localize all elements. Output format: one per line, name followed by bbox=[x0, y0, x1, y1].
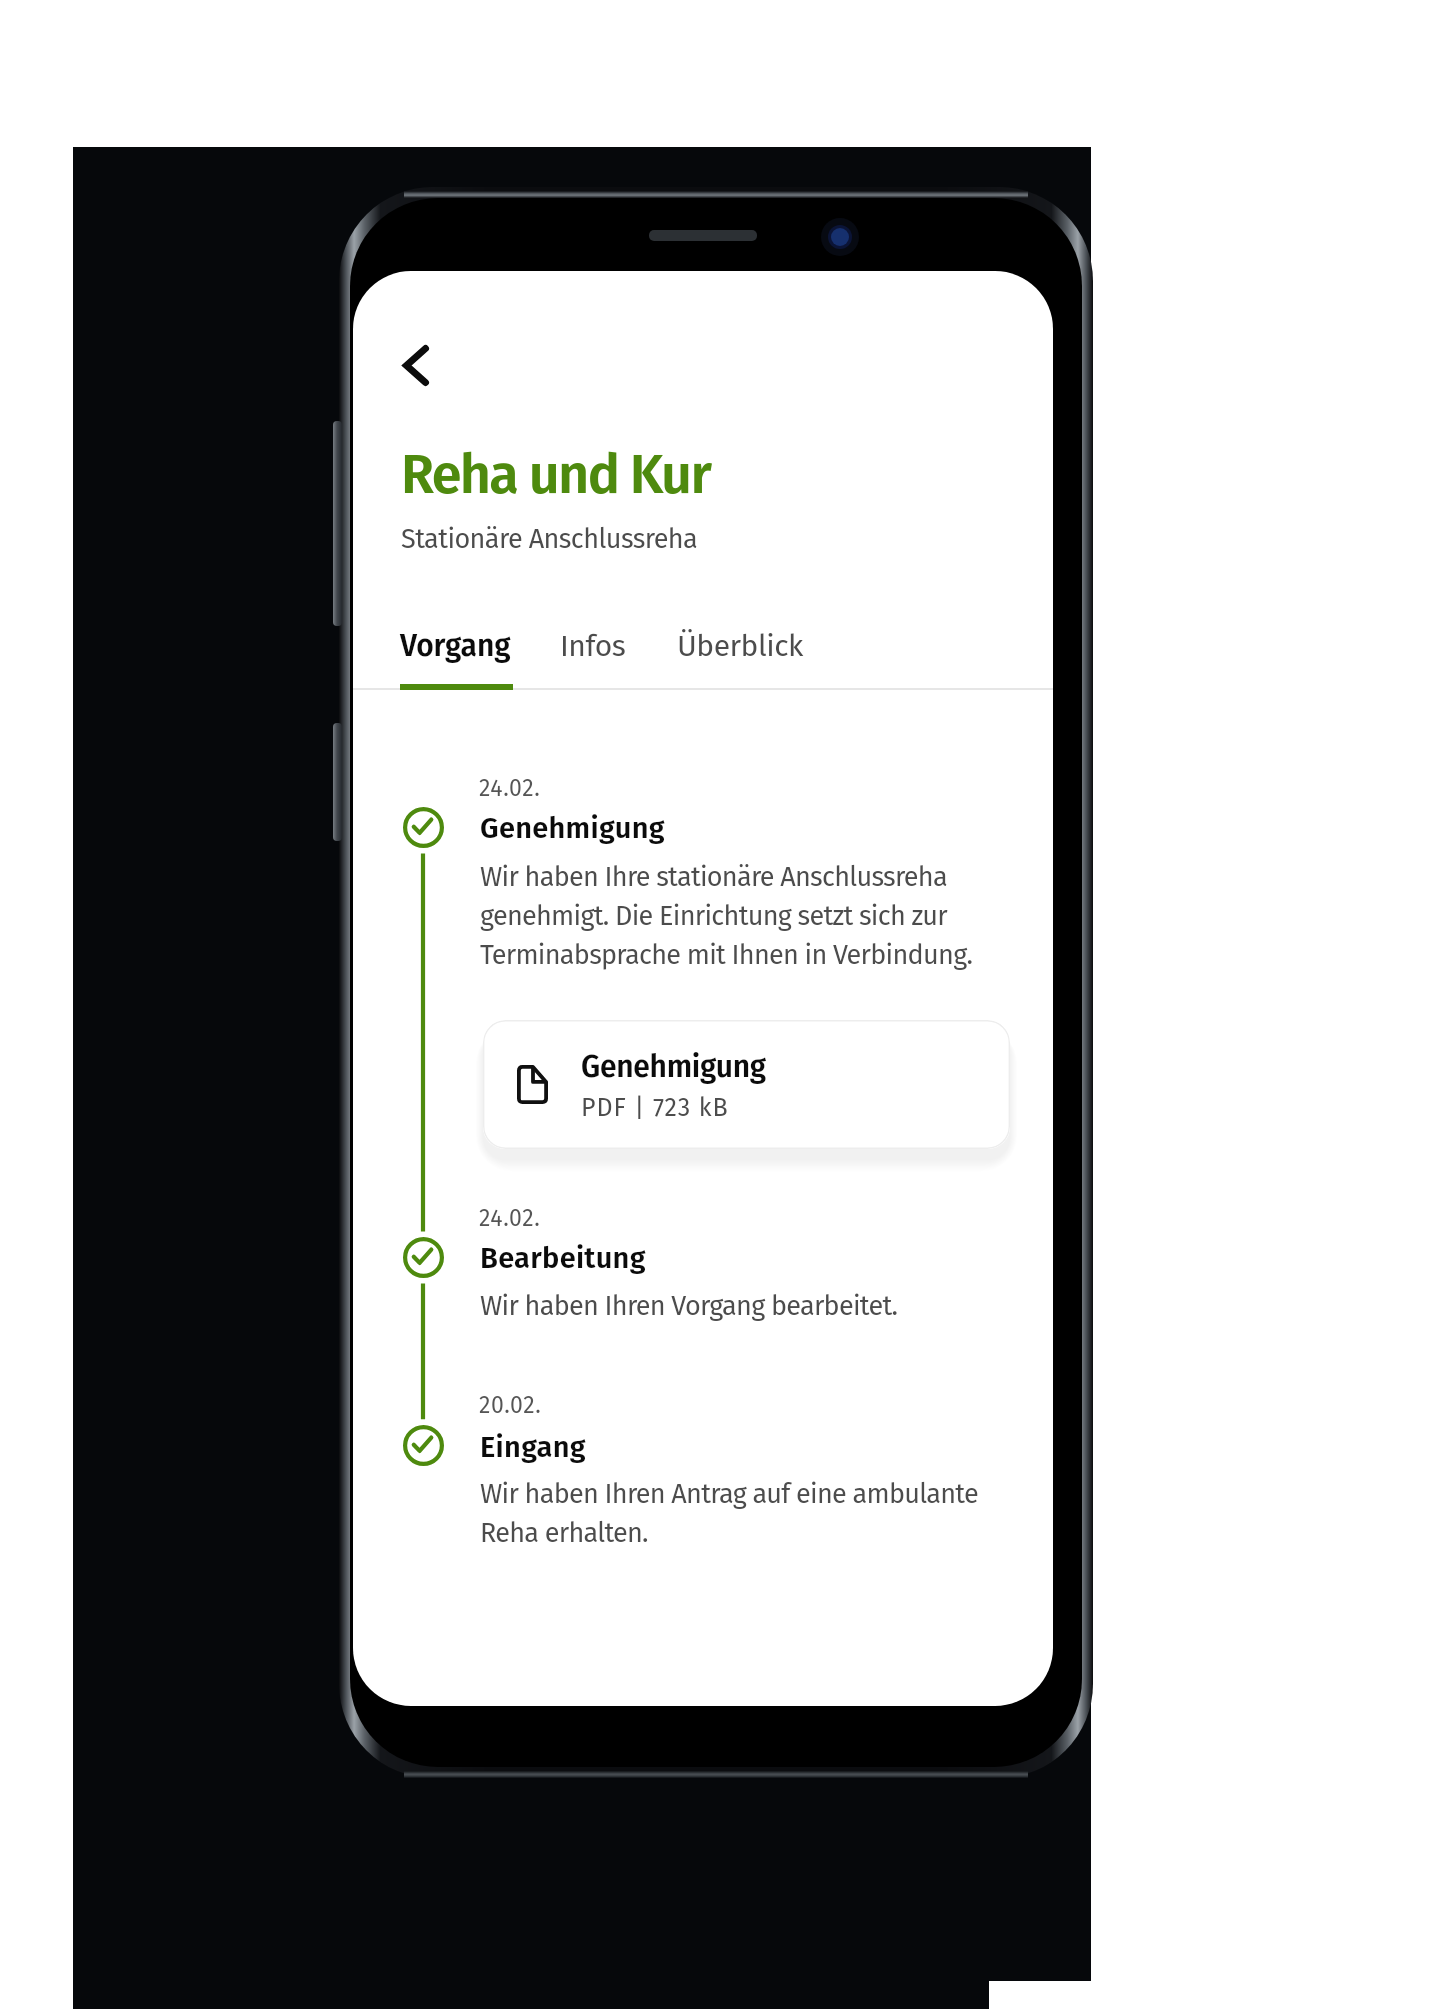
staticText: Wir haben Ihre stationäre Anschlussreha … bbox=[480, 856, 1000, 973]
staticText: Genehmigung bbox=[581, 1049, 766, 1085]
staticText: Eingang bbox=[480, 1430, 586, 1465]
staticText: Vorgang bbox=[400, 628, 511, 664]
staticText: Überblick bbox=[677, 628, 803, 664]
staticText: Wir haben Ihren Vorgang bearbeitet. bbox=[480, 1285, 1000, 1324]
staticText: Stationäre Anschlussreha bbox=[401, 523, 698, 555]
button[interactable]: Vorgang bbox=[392, 612, 521, 690]
staticText: Bearbeitung bbox=[480, 1241, 646, 1276]
staticText: 20.02. bbox=[479, 1391, 542, 1419]
staticText: 24.02. bbox=[479, 774, 541, 802]
staticText: PDF | 723 kB bbox=[581, 1093, 729, 1123]
staticText: 24.02. bbox=[479, 1204, 541, 1232]
button[interactable]: Back bbox=[382, 331, 450, 399]
staticText: Genehmigung bbox=[480, 811, 665, 846]
button[interactable]: Genehmigung bbox=[483, 1020, 1010, 1149]
button[interactable]: Infos bbox=[552, 612, 634, 690]
button[interactable]: Überblick bbox=[669, 612, 812, 690]
staticText: Infos bbox=[560, 628, 626, 664]
staticText: Wir haben Ihren Antrag auf eine ambulant… bbox=[480, 1473, 1000, 1551]
staticText: Reha und Kur bbox=[401, 443, 711, 508]
